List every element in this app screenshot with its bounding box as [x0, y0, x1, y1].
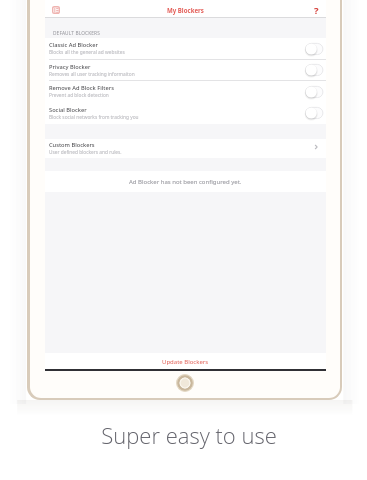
staticText: Block social networks from tracking you: [49, 114, 139, 121]
button[interactable]: [0, 0, 281, 22]
staticText: Super easy to use: [101, 420, 277, 450]
staticText: Blocks all the general ad websites: [49, 49, 125, 56]
button[interactable]: Blockers: [51, 5, 61, 15]
staticText: Privacy Blocker: [49, 63, 91, 71]
staticText: Prevent ad block detection: [49, 92, 109, 99]
staticText: Social Blocker: [49, 106, 87, 114]
staticText: User defined blockers and rules.: [49, 149, 122, 156]
staticText: Removes all user tracking informaiton: [49, 71, 135, 78]
staticText: Update Blockers: [162, 358, 209, 366]
button[interactable]: [0, 0, 281, 21]
button[interactable]: Toggle Classic Ad Blocker: [304, 42, 324, 56]
staticText: Remove Ad Block Filters: [49, 84, 114, 92]
staticText: Classic Ad Blocker: [49, 41, 98, 49]
button[interactable]: [0, 0, 281, 22]
staticText: My Blockers: [167, 6, 204, 14]
button[interactable]: [0, 0, 281, 17]
button[interactable]: Home: [175, 373, 195, 393]
button[interactable]: Toggle Privacy Blocker: [304, 63, 324, 77]
staticText: Ad Blocker has not been configured yet.: [129, 178, 242, 186]
staticText: DEFAULT BLOCKERS: [53, 30, 100, 37]
staticText: Custom Blockers: [49, 141, 95, 149]
button[interactable]: [0, 0, 281, 19]
button[interactable]: Toggle Social Blocker: [304, 106, 324, 120]
staticText: ?: [314, 4, 319, 15]
button[interactable]: [0, 0, 281, 22]
button[interactable]: Toggle Remove Ad Block Filters: [304, 85, 324, 99]
button[interactable]: Help: [311, 4, 322, 15]
